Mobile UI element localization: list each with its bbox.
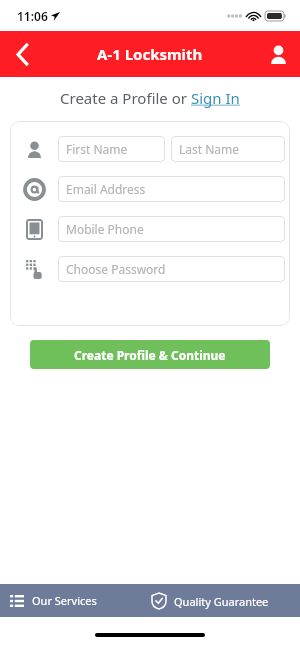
button[interactable]: Last Name: [171, 136, 285, 162]
button[interactable]: Back: [0, 32, 44, 76]
staticText: Create a Profile or: [60, 88, 191, 108]
button[interactable]: Quality Guarantee: [150, 593, 300, 609]
button[interactable]: Account: [256, 32, 300, 76]
staticText: 11:06: [17, 8, 48, 24]
staticText: Email Address: [66, 181, 146, 197]
button[interactable]: Choose Password: [58, 256, 285, 282]
staticText: Quality Guarantee: [174, 594, 269, 609]
button[interactable]: Create Profile & Continue: [30, 340, 270, 369]
button[interactable]: Mobile Phone: [58, 216, 285, 242]
button[interactable]: Sign In: [191, 88, 240, 108]
staticText: Our Services: [32, 593, 97, 608]
button[interactable]: Email Address: [58, 176, 285, 202]
staticText: Create Profile & Continue: [74, 347, 226, 363]
button[interactable]: First Name: [58, 136, 165, 162]
staticText: Last Name: [179, 141, 240, 157]
staticText: A-1 Locksmith: [97, 44, 203, 64]
staticText: First Name: [66, 141, 128, 157]
button[interactable]: Our Services: [0, 593, 150, 608]
staticText: Choose Password: [66, 261, 166, 277]
staticText: Mobile Phone: [66, 221, 144, 237]
